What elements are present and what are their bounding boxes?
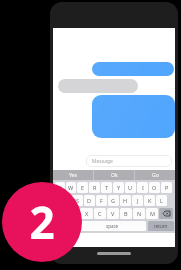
button[interactable]: Yes xyxy=(53,170,93,180)
staticText: G xyxy=(111,197,116,204)
staticText: E xyxy=(81,184,85,191)
staticText: P xyxy=(165,184,169,191)
button[interactable]: I xyxy=(137,182,148,193)
button[interactable]: G xyxy=(108,195,119,206)
button[interactable]: Q xyxy=(55,182,65,193)
button[interactable]: Step 2 xyxy=(2,182,82,262)
button[interactable] xyxy=(58,79,138,93)
staticText: W xyxy=(68,184,74,191)
button[interactable] xyxy=(92,95,175,138)
staticText: 2 xyxy=(29,192,55,252)
button[interactable]: Y xyxy=(113,182,124,193)
button[interactable]: D xyxy=(84,195,95,206)
button[interactable]: L xyxy=(156,195,167,206)
button[interactable]: O xyxy=(149,182,160,193)
staticText: F xyxy=(100,197,103,204)
staticText: return xyxy=(154,223,168,229)
staticText: U xyxy=(128,184,133,191)
staticText: S xyxy=(76,197,80,204)
staticText: Yes xyxy=(69,172,77,179)
staticText: R xyxy=(93,184,97,191)
staticText: H xyxy=(123,197,128,204)
button[interactable]: B xyxy=(120,208,132,219)
staticText: Ok xyxy=(111,172,118,179)
staticText: B xyxy=(124,210,128,217)
staticText: T xyxy=(105,184,109,191)
staticText: Message xyxy=(92,158,113,165)
staticText: L xyxy=(160,197,163,204)
staticText: M xyxy=(150,210,155,217)
button[interactable]: Ok xyxy=(94,170,134,180)
button[interactable]: X xyxy=(80,208,93,219)
button[interactable]: M xyxy=(146,208,158,219)
button[interactable]: return xyxy=(148,221,174,231)
staticText: N xyxy=(137,210,142,217)
staticText: C xyxy=(98,210,102,217)
staticText: J xyxy=(137,197,139,204)
staticText: X xyxy=(85,210,89,217)
staticText: K xyxy=(148,197,152,204)
button[interactable]: E xyxy=(77,182,88,193)
button[interactable]: C xyxy=(94,208,106,219)
staticText: Go xyxy=(152,172,159,179)
button[interactable]: space xyxy=(78,221,146,231)
staticText: D xyxy=(87,197,92,204)
staticText: space xyxy=(106,223,119,229)
button[interactable]: N xyxy=(133,208,145,219)
button[interactable]: U xyxy=(125,182,136,193)
button[interactable]: P xyxy=(161,182,172,193)
button[interactable]: K xyxy=(144,195,155,206)
staticText: O xyxy=(152,184,157,191)
staticText: Q xyxy=(58,184,63,191)
button[interactable]: V xyxy=(107,208,119,219)
button[interactable]: T xyxy=(101,182,112,193)
button[interactable]: Backspace xyxy=(159,208,173,219)
button[interactable] xyxy=(92,62,174,76)
staticText: V xyxy=(111,210,115,217)
button[interactable]: Message xyxy=(86,155,172,167)
button[interactable]: W xyxy=(66,182,76,193)
staticText: Y xyxy=(117,184,121,191)
button[interactable]: F xyxy=(96,195,107,206)
button[interactable]: S xyxy=(72,195,83,206)
button[interactable]: H xyxy=(120,195,131,206)
button[interactable]: J xyxy=(132,195,143,206)
button[interactable]: R xyxy=(89,182,100,193)
staticText: I xyxy=(142,184,144,191)
button[interactable]: Go xyxy=(135,170,175,180)
